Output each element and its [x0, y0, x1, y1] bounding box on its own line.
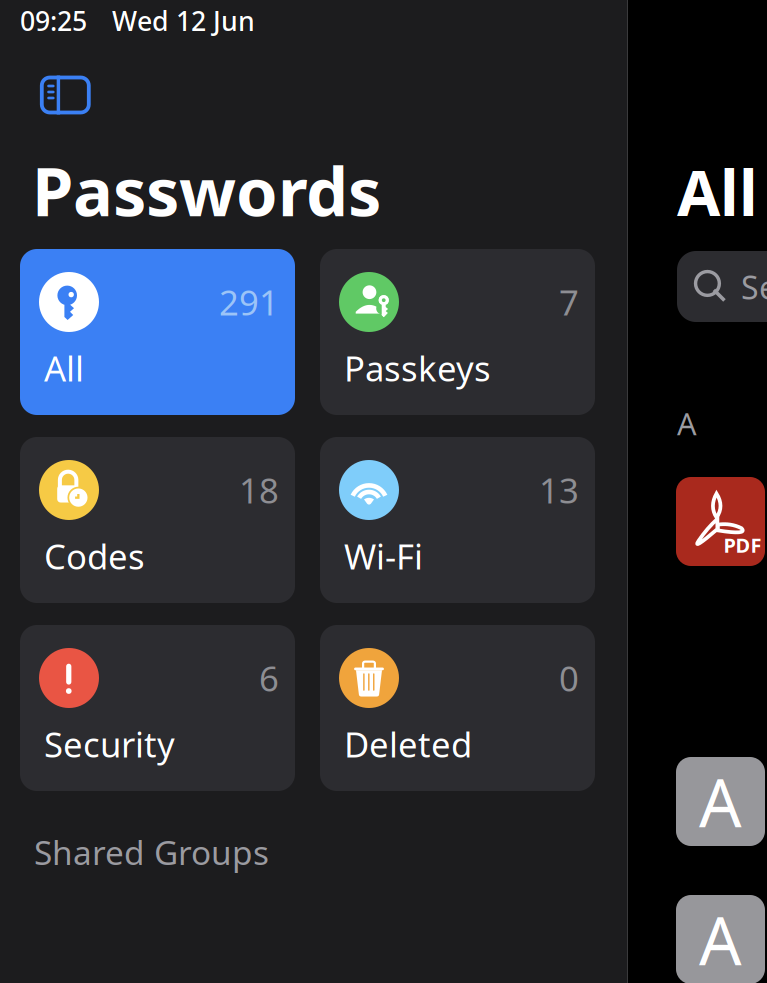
staticText: Search [741, 266, 767, 308]
staticText: Wi-Fi [344, 533, 423, 579]
staticText: 09:25 [20, 3, 87, 38]
staticText: Wed 12 Jun [112, 3, 255, 38]
staticText: PDF [724, 532, 762, 558]
staticText: A [677, 403, 697, 444]
button[interactable]: 291 [20, 249, 295, 415]
button[interactable]: 6 [20, 625, 295, 791]
staticText: 13 [539, 467, 579, 513]
staticText: A [699, 757, 742, 846]
staticText: A [699, 895, 742, 983]
button[interactable]: Search [677, 251, 767, 322]
button[interactable]: Hide Sidebar [41, 76, 90, 113]
staticText: Shared Groups [34, 830, 269, 874]
button[interactable]: 18 [20, 437, 295, 603]
staticText: 7 [559, 279, 579, 325]
staticText: Passkeys [344, 345, 491, 391]
button[interactable]: Account [676, 757, 765, 846]
staticText: 0 [559, 655, 579, 701]
staticText: 291 [219, 279, 279, 325]
staticText: 6 [259, 655, 279, 701]
staticText: All [44, 345, 84, 391]
staticText: Security [44, 721, 175, 767]
staticText: Deleted [344, 721, 472, 767]
staticText: All [677, 150, 758, 233]
button[interactable]: 7 [320, 249, 595, 415]
staticText: Codes [44, 533, 145, 579]
button[interactable]: 13 [320, 437, 595, 603]
staticText: Passwords [32, 146, 381, 234]
staticText: 18 [239, 467, 279, 513]
button[interactable]: 0 [320, 625, 595, 791]
button[interactable]: Adobe [676, 477, 765, 566]
button[interactable]: Account [676, 895, 765, 983]
